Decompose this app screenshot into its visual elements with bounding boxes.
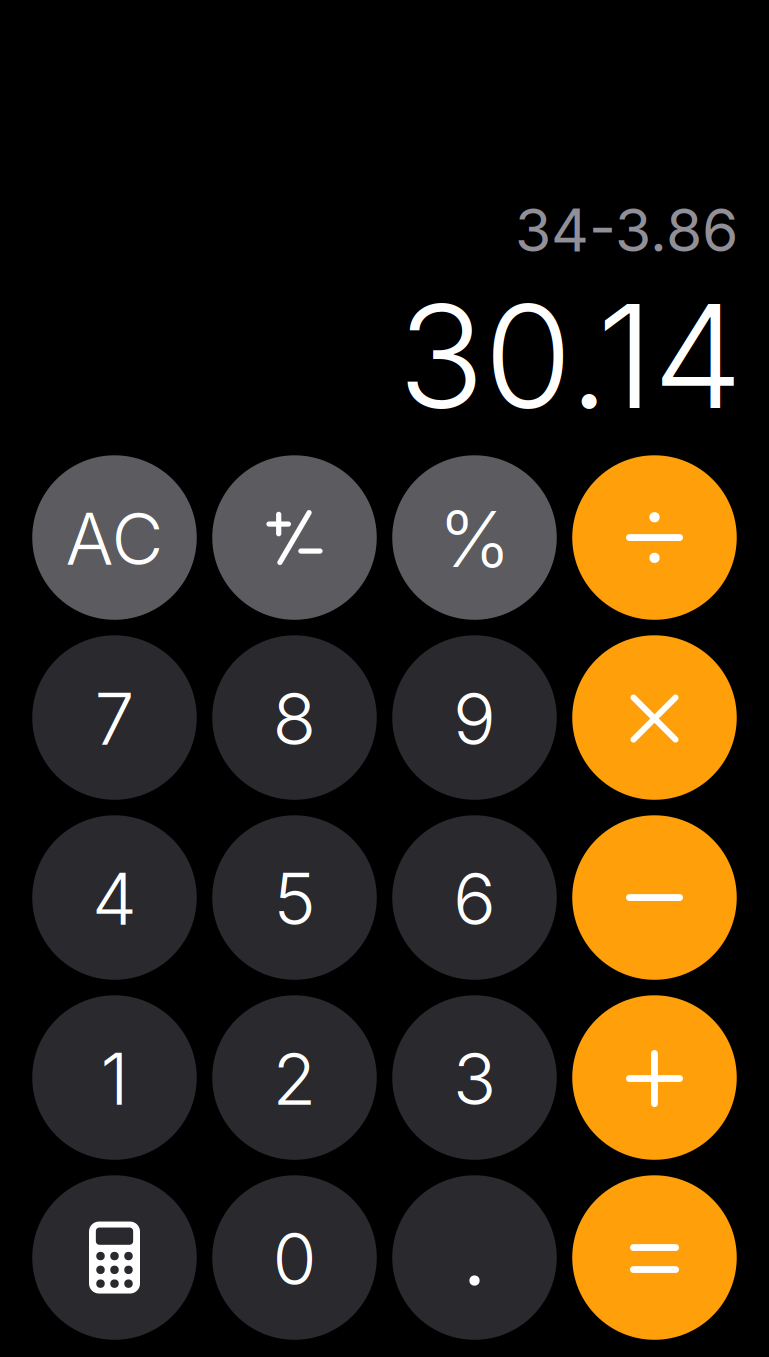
staticText: % — [438, 492, 510, 586]
button[interactable]: 2 — [212, 995, 377, 1160]
staticText: 30.14 — [398, 270, 743, 442]
button[interactable]: AC — [32, 455, 197, 620]
button[interactable]: Calculator — [32, 1175, 197, 1340]
button[interactable]: Equals — [572, 1175, 737, 1340]
staticText: 1 — [100, 1036, 128, 1122]
button[interactable]: 5 — [212, 815, 377, 980]
staticText: 5 — [273, 856, 315, 942]
button[interactable]: 8 — [212, 635, 377, 800]
button[interactable]: 1 — [32, 995, 197, 1160]
staticText: 0 — [272, 1216, 316, 1302]
button[interactable]: 4 — [32, 815, 197, 980]
button[interactable]: Decimal point — [392, 1175, 557, 1340]
staticText: 6 — [453, 856, 496, 942]
button[interactable]: 0 — [212, 1175, 377, 1340]
button[interactable]: 3 — [392, 995, 557, 1160]
staticText: 2 — [272, 1036, 316, 1122]
staticText: 34-3.86 — [515, 195, 738, 266]
button[interactable]: 9 — [392, 635, 557, 800]
staticText: 9 — [453, 676, 496, 762]
staticText: AC — [65, 496, 163, 582]
button[interactable]: Plus — [572, 995, 737, 1160]
button[interactable]: Multiply — [572, 635, 737, 800]
button[interactable]: Divide — [572, 455, 737, 620]
button[interactable]: Plus minus — [212, 455, 377, 620]
button[interactable]: Percent — [392, 455, 557, 620]
staticText: 8 — [272, 676, 316, 762]
staticText: 4 — [92, 856, 137, 942]
button[interactable]: Minus — [572, 815, 737, 980]
button[interactable]: 6 — [392, 815, 557, 980]
staticText: 3 — [453, 1036, 496, 1122]
button[interactable]: 7 — [32, 635, 197, 800]
staticText: 7 — [94, 676, 134, 762]
